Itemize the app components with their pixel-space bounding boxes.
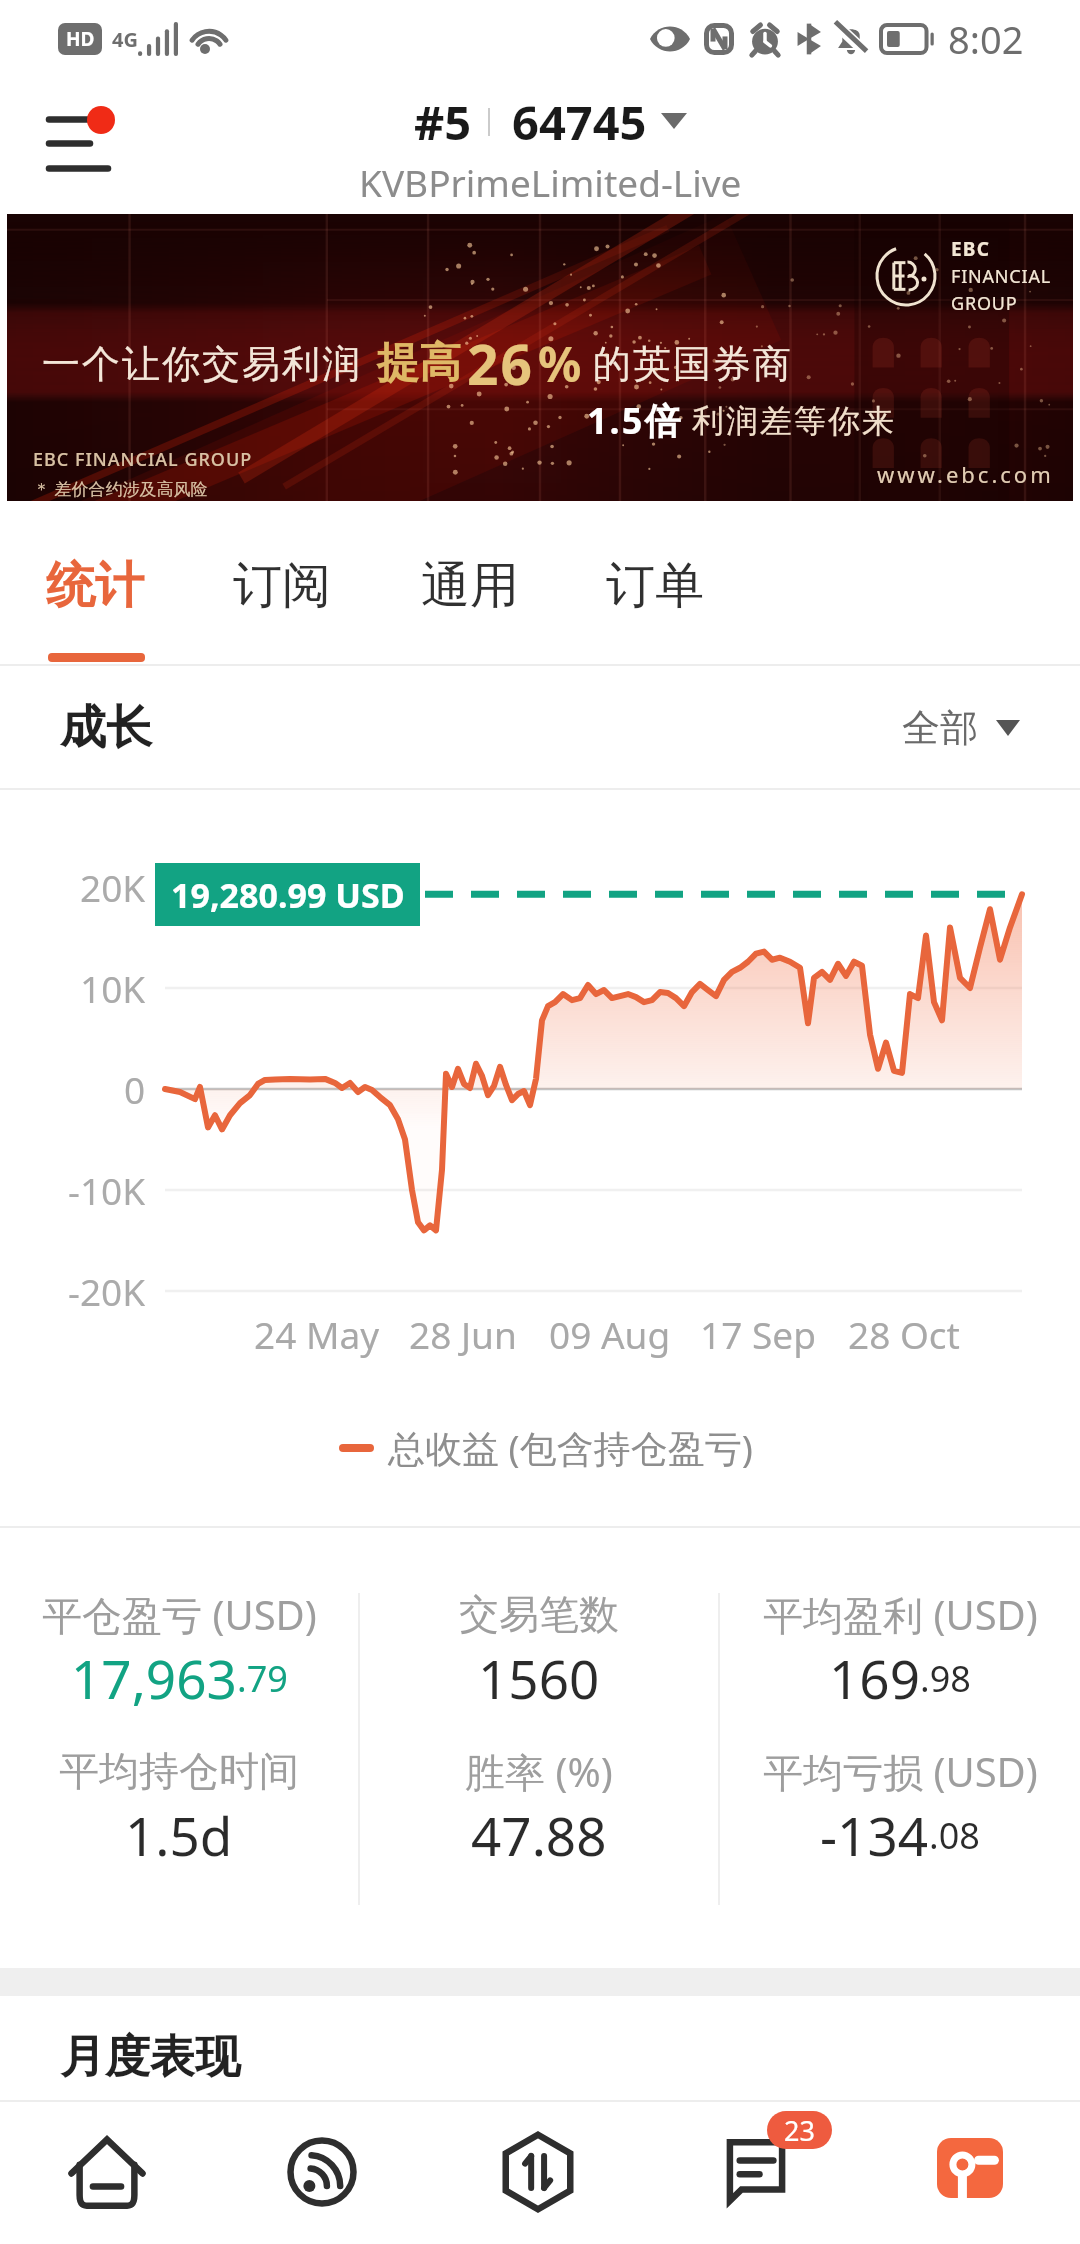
staticText: 20K xyxy=(80,862,146,912)
button[interactable]: Trade xyxy=(452,2100,624,2244)
staticText: 28 Jun xyxy=(409,1309,517,1359)
button[interactable]: Menu xyxy=(28,94,138,198)
staticText: 19,280.99 USD xyxy=(171,872,405,918)
staticText: 28 Oct xyxy=(848,1309,960,1359)
staticText: .08 xyxy=(929,1811,980,1860)
button[interactable]: 平均盈利 (USD) xyxy=(720,1586,1080,1726)
staticText: .79 xyxy=(237,1654,288,1703)
staticText: % xyxy=(538,331,582,396)
staticText: -134 xyxy=(820,1799,929,1863)
staticText: 通用 xyxy=(421,555,519,617)
button[interactable]: Profile xyxy=(884,2100,1056,2244)
button[interactable]: 通用 xyxy=(399,521,541,651)
button[interactable]: 一个让你交易利润 xyxy=(7,214,1073,501)
button[interactable]: 平均持仓时间 xyxy=(0,1743,358,1883)
staticText: 利润差等你来 xyxy=(691,401,895,441)
staticText: 平均亏损 (USD) xyxy=(763,1744,1038,1799)
staticText: 1.5d xyxy=(125,1799,233,1863)
staticText: 订阅 xyxy=(233,555,331,617)
staticText: 的英国券商 xyxy=(592,340,792,388)
staticText: .98 xyxy=(920,1654,971,1703)
button[interactable]: 平仓盈亏 (USD) xyxy=(0,1586,358,1726)
staticText: 64745 xyxy=(512,90,647,154)
staticText: 26 xyxy=(467,326,534,401)
staticText: 月度表现 xyxy=(60,2029,240,2086)
staticText: ＊ 差价合约涉及高风险 xyxy=(33,477,208,500)
button[interactable]: Messages xyxy=(669,2100,841,2244)
staticText: 1.5倍 xyxy=(587,396,683,445)
button[interactable]: 交易笔数 xyxy=(360,1586,718,1726)
staticText: HD xyxy=(66,26,95,52)
staticText: 平均盈利 (USD) xyxy=(763,1587,1038,1642)
button[interactable]: 订单 xyxy=(584,521,726,651)
staticText: 8:02 xyxy=(948,13,1024,65)
staticText: EBC FINANCIAL GROUP xyxy=(33,447,253,472)
staticText: 47.88 xyxy=(471,1799,607,1863)
button[interactable]: 统计 xyxy=(24,521,166,651)
staticText: 23 xyxy=(784,2112,815,2149)
staticText: 全部 xyxy=(902,704,978,752)
staticText: -20K xyxy=(68,1266,146,1316)
staticText: 17 Sep xyxy=(700,1309,816,1359)
staticText: 169 xyxy=(829,1642,920,1706)
staticText: #5 xyxy=(414,90,472,154)
button[interactable]: Signals xyxy=(236,2100,408,2244)
staticText: 1560 xyxy=(478,1642,600,1706)
staticText: www.ebc.com xyxy=(877,459,1054,489)
staticText: 09 Aug xyxy=(549,1309,671,1359)
staticText: 平均持仓时间 xyxy=(59,1746,299,1796)
staticText: 4G xyxy=(112,26,138,53)
button[interactable]: 平均亏损 (USD) xyxy=(720,1743,1080,1883)
staticText: 成长 xyxy=(60,699,152,757)
staticText: 提高 xyxy=(377,337,461,390)
staticText: 总收益 (包含持仓盈亏) xyxy=(388,1422,753,1473)
staticText: 一个让你交易利润 xyxy=(41,340,361,388)
staticText: 交易笔数 xyxy=(459,1589,619,1639)
staticText: 平仓盈亏 (USD) xyxy=(42,1587,317,1642)
button[interactable]: 全部 xyxy=(894,696,1028,760)
button[interactable]: Home xyxy=(21,2100,193,2244)
staticText: EBC xyxy=(951,236,991,262)
staticText: 17,963 xyxy=(71,1642,237,1706)
staticText: 24 May xyxy=(254,1309,380,1359)
button[interactable]: 胜率 (%) xyxy=(360,1743,718,1883)
staticText: KVBPrimeLimited-Live xyxy=(359,157,742,207)
staticText: -10K xyxy=(68,1165,146,1215)
staticText: 0 xyxy=(124,1064,146,1114)
staticText: 统计 xyxy=(46,555,144,617)
staticText: 胜率 (%) xyxy=(465,1744,613,1799)
staticText: 10K xyxy=(80,963,146,1013)
staticText: GROUP xyxy=(951,291,1018,316)
staticText: 订单 xyxy=(606,555,704,617)
staticText: FINANCIAL xyxy=(951,264,1051,289)
button[interactable]: 订阅 xyxy=(211,521,353,651)
